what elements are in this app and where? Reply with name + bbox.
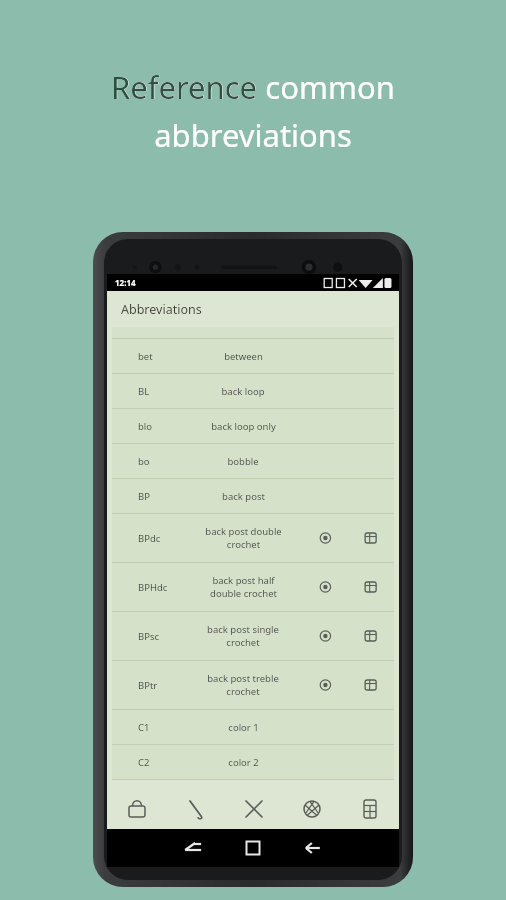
staticText: BPtr (138, 679, 158, 692)
staticText: back post single crochet (207, 623, 279, 649)
staticText: Reference common (111, 66, 395, 108)
staticText: Reference (111, 66, 258, 108)
button[interactable]: Projects (107, 789, 166, 829)
button[interactable]: Yarn (283, 789, 341, 829)
staticText: back post treble crochet (207, 672, 279, 698)
staticText: 12:14 (115, 277, 136, 288)
staticText: back post half double crochet (210, 574, 277, 600)
button[interactable]: BPtr (112, 661, 394, 709)
staticText: BL (138, 385, 150, 398)
button[interactable]: bet (112, 339, 394, 373)
button[interactable]: BPsc (112, 612, 394, 660)
button[interactable]: Row actions (302, 531, 380, 545)
button[interactable]: Hooks (166, 789, 225, 829)
staticText: bo (138, 455, 150, 468)
button[interactable]: blo (112, 409, 394, 443)
button[interactable]: BPdc (112, 514, 394, 562)
staticText: abbreviations (154, 114, 352, 156)
staticText: color 1 (228, 721, 259, 734)
staticText: bet (138, 350, 153, 363)
button[interactable]: Row actions (302, 678, 380, 692)
button[interactable]: bo (112, 444, 394, 478)
button[interactable]: BP (112, 479, 394, 513)
staticText: BPsc (138, 630, 160, 643)
staticText: BP (138, 490, 150, 503)
button[interactable]: BPHdc (112, 563, 394, 611)
staticText: back post double crochet (205, 525, 282, 551)
staticText: BPdc (138, 532, 161, 545)
staticText: back loop (221, 385, 265, 398)
button[interactable]: Row actions (302, 580, 380, 594)
button[interactable]: Abbreviations (107, 291, 399, 327)
staticText: common (258, 66, 396, 108)
staticText: Abbreviations (121, 301, 202, 318)
button[interactable]: C1 (112, 710, 394, 744)
staticText: blo (138, 420, 153, 433)
button[interactable]: Needles (225, 789, 283, 829)
button[interactable]: Counter (341, 789, 399, 829)
staticText: C2 (138, 756, 150, 769)
staticText: bobble (227, 455, 259, 468)
button[interactable]: Row actions (302, 629, 380, 643)
staticText: BPHdc (138, 581, 168, 594)
staticText: color 2 (228, 756, 259, 769)
staticText: back post (222, 490, 265, 503)
button[interactable]: BL (112, 374, 394, 408)
staticText: C1 (138, 721, 150, 734)
staticText: between (224, 350, 263, 363)
button[interactable]: C2 (112, 745, 394, 779)
staticText: back loop only (211, 420, 276, 433)
